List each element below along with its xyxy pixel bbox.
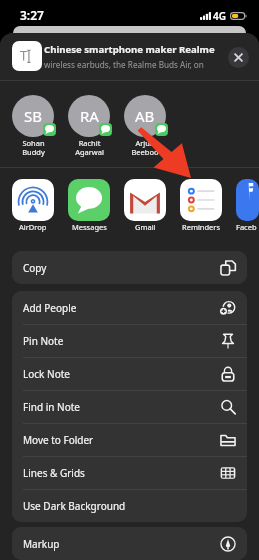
button[interactable]: RA <box>68 95 110 157</box>
button[interactable]: Move to Folder <box>12 423 247 456</box>
staticText: Copy <box>23 261 220 275</box>
button[interactable]: Close <box>228 47 249 68</box>
button[interactable]: Add People <box>12 291 247 324</box>
staticText: AirDrop <box>19 222 47 232</box>
button[interactable]: Markup <box>12 527 247 560</box>
staticText: SB <box>24 106 42 126</box>
staticText: Lines & Grids <box>23 466 220 480</box>
staticText: Pin Note <box>23 334 220 348</box>
staticText: Arjun Beeboo <box>131 138 159 157</box>
button[interactable]: Messages <box>68 179 110 232</box>
staticText: 4G <box>213 9 226 23</box>
staticText: Reminders <box>182 222 221 232</box>
button[interactable]: Pin Note <box>12 324 247 357</box>
staticText: 3:27 <box>20 7 44 23</box>
staticText: Messages <box>72 222 107 232</box>
button[interactable]: Gmail <box>124 179 166 232</box>
staticText: wireless earbuds, the Realme Buds Air, o… <box>44 59 222 70</box>
button[interactable]: AirDrop <box>12 179 54 232</box>
button[interactable]: Lines & Grids <box>12 456 247 489</box>
button[interactable]: SB <box>12 95 54 157</box>
button[interactable]: AB <box>124 95 166 157</box>
button[interactable]: Lock Note <box>12 357 247 390</box>
staticText: AB <box>135 106 155 126</box>
button[interactable]: Copy <box>12 251 247 284</box>
staticText: Markup <box>23 537 220 551</box>
button[interactable]: Reminders <box>180 179 222 232</box>
staticText: Find in Note <box>23 400 220 414</box>
staticText: Chinese smartphone maker Realme wi… <box>44 43 222 56</box>
staticText: Gmail <box>135 222 156 232</box>
staticText: Lock Note <box>23 367 220 381</box>
button[interactable]: Find in Note <box>12 390 247 423</box>
staticText: Facebook <box>236 222 259 232</box>
staticText: Use Dark Background <box>23 499 236 513</box>
button[interactable]: Use Dark Background <box>12 489 247 522</box>
staticText: Rachit Agarwal <box>75 138 104 157</box>
button[interactable]: Facebook <box>236 179 259 232</box>
staticText: Move to Folder <box>23 433 220 447</box>
staticText: Sohan Buddy <box>22 138 45 157</box>
staticText: Add People <box>23 301 220 315</box>
staticText: RA <box>80 106 99 126</box>
